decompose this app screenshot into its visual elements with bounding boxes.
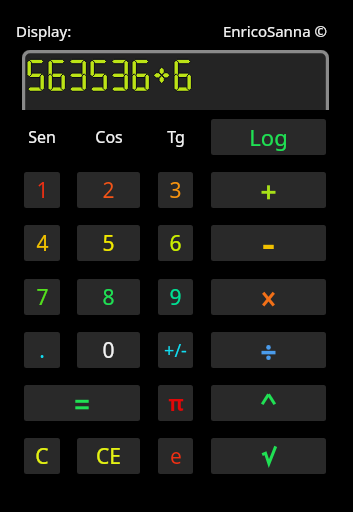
staticText: Tg xyxy=(167,126,185,148)
staticText: 0 xyxy=(102,336,115,365)
button[interactable]: 7 xyxy=(24,279,60,315)
button[interactable]: 9 xyxy=(158,279,193,315)
staticText: Display: xyxy=(16,21,72,41)
button[interactable]: Divide xyxy=(211,332,326,368)
staticText: e xyxy=(170,442,182,471)
button[interactable]: +/- xyxy=(158,332,193,368)
button[interactable]: Tg xyxy=(158,119,193,155)
staticText: C xyxy=(35,442,49,471)
staticText: π xyxy=(168,389,184,418)
staticText: 8 xyxy=(102,283,115,312)
button[interactable]: π xyxy=(158,385,193,421)
staticText: 7 xyxy=(36,283,49,312)
staticText: CE xyxy=(96,442,121,471)
staticText: Log xyxy=(249,122,288,152)
staticText: 9 xyxy=(169,283,182,312)
staticText: 5 xyxy=(102,229,115,258)
button[interactable]: Plus xyxy=(211,172,326,208)
staticText: 1 xyxy=(36,176,49,205)
staticText: Sen xyxy=(28,126,56,148)
staticText: 4 xyxy=(36,229,49,258)
button[interactable]: 4 xyxy=(24,225,60,261)
button[interactable]: 2 xyxy=(77,172,140,208)
button[interactable]: . xyxy=(24,332,60,368)
button[interactable]: Cos xyxy=(77,119,140,155)
button[interactable]: Minus xyxy=(211,225,326,261)
button[interactable]: Power xyxy=(211,385,326,421)
staticText: +/- xyxy=(164,338,187,363)
button[interactable]: 6 xyxy=(158,225,193,261)
button[interactable]: Square root xyxy=(211,438,326,474)
button[interactable]: C xyxy=(24,438,60,474)
staticText: 2 xyxy=(102,176,115,205)
button[interactable]: Multiply xyxy=(211,279,326,315)
staticText: 3 xyxy=(169,176,182,205)
staticText: 6 xyxy=(169,229,182,258)
button[interactable]: 8 xyxy=(77,279,140,315)
button[interactable]: Equals xyxy=(24,385,140,421)
button[interactable]: CE xyxy=(77,438,140,474)
button[interactable]: 5 xyxy=(77,225,140,261)
button[interactable]: 1 xyxy=(24,172,60,208)
button[interactable]: e xyxy=(158,438,193,474)
button[interactable]: 3 xyxy=(158,172,193,208)
button[interactable]: 0 xyxy=(77,332,140,368)
button[interactable]: Sen xyxy=(24,119,60,155)
button[interactable]: Log xyxy=(211,119,326,155)
staticText: Cos xyxy=(95,126,123,148)
staticText: . xyxy=(39,336,45,365)
staticText: EnricoSanna © xyxy=(223,21,327,41)
